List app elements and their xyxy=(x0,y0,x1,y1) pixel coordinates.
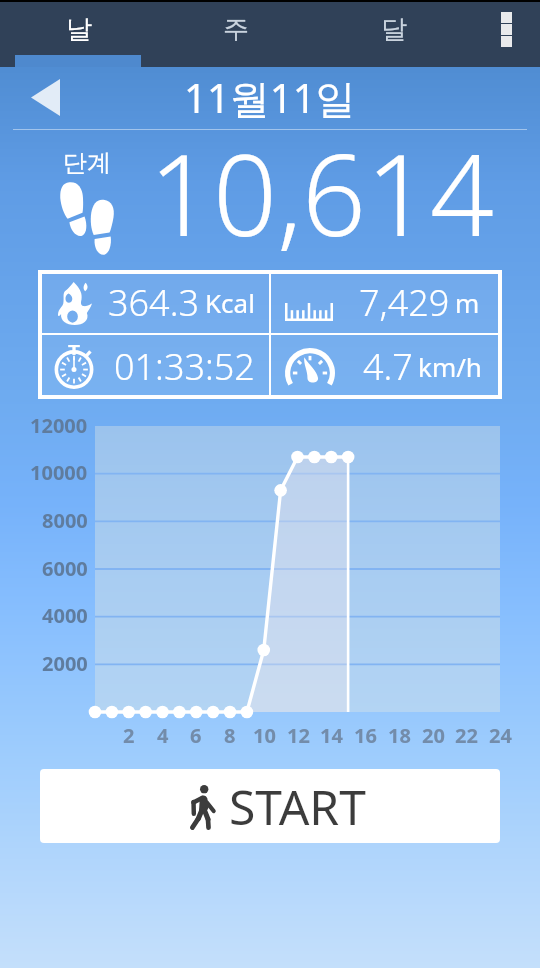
staticText: 6 xyxy=(190,722,202,748)
button[interactable]: 364.3 xyxy=(40,272,269,333)
staticText: 10 xyxy=(253,722,276,748)
staticText: START xyxy=(229,774,366,839)
button[interactable]: 4.7 xyxy=(271,335,500,397)
staticText: 7,429 xyxy=(359,278,450,327)
staticText: km/h xyxy=(418,349,482,384)
staticText: 01:33:52 xyxy=(114,342,255,391)
button[interactable]: 7,429 xyxy=(271,272,500,333)
staticText: 날 xyxy=(66,13,92,46)
staticText: Kcal xyxy=(205,285,255,320)
staticText: 18 xyxy=(388,722,411,748)
staticText: 달 xyxy=(381,13,407,46)
staticText: 22 xyxy=(455,722,478,748)
staticText: 20 xyxy=(422,722,445,748)
button[interactable]: 날 xyxy=(0,2,157,56)
staticText: 8 xyxy=(224,722,236,748)
staticText: 12000 xyxy=(30,412,88,436)
button[interactable]: 달 xyxy=(315,2,473,56)
staticText: 주 xyxy=(223,13,249,46)
button[interactable]: More options xyxy=(473,2,540,56)
staticText: 11월11일 xyxy=(184,70,356,125)
staticText: 10000 xyxy=(30,459,88,483)
button[interactable]: 01:33:52 xyxy=(40,335,269,397)
staticText: 2000 xyxy=(42,650,88,674)
staticText: m xyxy=(455,285,480,320)
button[interactable]: 주 xyxy=(157,2,315,56)
staticText: 2 xyxy=(123,722,135,748)
staticText: 14 xyxy=(320,722,343,748)
staticText: 8000 xyxy=(42,507,88,531)
staticText: 364.3 xyxy=(108,278,200,327)
button[interactable]: START xyxy=(40,769,500,843)
staticText: 6000 xyxy=(42,555,88,579)
staticText: 12 xyxy=(287,722,310,748)
button[interactable]: Previous day xyxy=(14,70,76,124)
staticText: 10,614 xyxy=(149,116,494,269)
staticText: 24 xyxy=(489,722,512,748)
staticText: 16 xyxy=(354,722,377,748)
staticText: 단계 xyxy=(63,148,111,178)
staticText: 4 xyxy=(157,722,169,748)
staticText: 4.7 xyxy=(363,342,413,391)
staticText: 4000 xyxy=(42,602,88,626)
